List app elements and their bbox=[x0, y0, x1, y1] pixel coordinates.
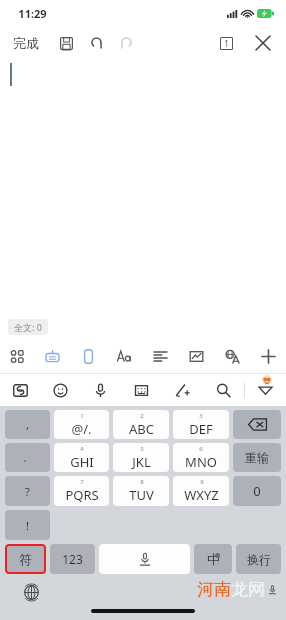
button[interactable]: Page count bbox=[214, 31, 238, 55]
button[interactable]: 4 bbox=[54, 443, 109, 472]
staticText: 。 bbox=[23, 452, 32, 463]
button[interactable]: 完成 bbox=[10, 30, 42, 56]
staticText: ABC bbox=[129, 420, 154, 438]
staticText: , bbox=[26, 417, 29, 432]
button[interactable]: 3 bbox=[173, 410, 229, 439]
staticText: 河南 bbox=[197, 579, 231, 600]
button[interactable]: Translate bbox=[214, 340, 250, 373]
button[interactable]: ? bbox=[5, 476, 50, 506]
button[interactable]: Templates bbox=[0, 340, 35, 373]
button[interactable]: Handwriting bbox=[162, 374, 203, 406]
staticText: 完成 bbox=[13, 35, 39, 51]
button[interactable]: ! bbox=[5, 510, 50, 540]
staticText: 0 bbox=[253, 482, 261, 500]
button[interactable]: 2 bbox=[113, 410, 169, 439]
button[interactable]: Save bbox=[54, 31, 78, 55]
staticText: 123 bbox=[62, 551, 83, 567]
button[interactable]: Backspace bbox=[233, 410, 281, 439]
staticText: 5 bbox=[140, 445, 144, 453]
button[interactable]: 6 bbox=[173, 443, 229, 472]
button[interactable]: 7 bbox=[54, 476, 109, 506]
button[interactable]: Close bbox=[250, 30, 276, 56]
staticText: TUV bbox=[129, 486, 154, 504]
staticText: ? bbox=[25, 484, 30, 499]
button[interactable]: Alignment bbox=[142, 340, 178, 373]
button[interactable]: Switch input language bbox=[20, 581, 42, 603]
staticText: ! bbox=[26, 518, 29, 533]
button[interactable]: More bbox=[250, 340, 286, 373]
button[interactable]: Font size bbox=[106, 340, 142, 373]
button[interactable]: Page bbox=[70, 340, 106, 373]
button[interactable]: 1 bbox=[54, 410, 109, 439]
button[interactable]: Undo bbox=[84, 31, 108, 55]
staticText: 11:29 bbox=[18, 6, 47, 21]
staticText: 4 bbox=[80, 445, 84, 453]
button[interactable]: Insert image bbox=[178, 340, 214, 373]
staticText: 9 bbox=[200, 478, 204, 486]
staticText: 1 bbox=[80, 412, 84, 420]
button[interactable]: Hide keyboard bbox=[245, 374, 286, 406]
button[interactable]: 换行 bbox=[236, 544, 281, 574]
button[interactable]: 5 bbox=[113, 443, 169, 472]
button[interactable]: 0 bbox=[233, 476, 281, 506]
button[interactable]: 。 bbox=[5, 443, 50, 472]
staticText: GHI bbox=[70, 453, 94, 471]
staticText: 中 bbox=[207, 551, 220, 567]
staticText: 3 bbox=[199, 412, 203, 420]
staticText: 2 bbox=[140, 412, 144, 420]
button[interactable]: 重输 bbox=[233, 443, 281, 472]
button[interactable]: Redo bbox=[114, 31, 138, 55]
staticText: 龙网 bbox=[231, 579, 265, 600]
staticText: WXYZ bbox=[184, 486, 219, 504]
staticText: 换行 bbox=[247, 552, 271, 567]
button[interactable]: Clipboard bbox=[35, 340, 70, 373]
staticText: MNO bbox=[185, 453, 217, 471]
button[interactable]: Sogou input settings bbox=[0, 374, 40, 406]
staticText: @/. bbox=[71, 420, 92, 438]
staticText: 8 bbox=[140, 478, 144, 486]
staticText: 6 bbox=[199, 445, 203, 453]
staticText: 7 bbox=[80, 478, 84, 486]
button[interactable]: 9 bbox=[173, 476, 229, 506]
button[interactable]: Keyboard layout bbox=[121, 374, 162, 406]
staticText: 全文: 0 bbox=[14, 321, 42, 333]
button[interactable]: Space bbox=[99, 544, 190, 574]
button[interactable]: 123 bbox=[50, 544, 95, 574]
button[interactable]: Emoji bbox=[40, 374, 80, 406]
button[interactable]: Search bbox=[203, 374, 244, 406]
staticText: 1 bbox=[224, 38, 229, 49]
staticText: JKL bbox=[132, 453, 151, 471]
staticText: 重输 bbox=[245, 450, 269, 465]
staticText: PQRS bbox=[65, 486, 99, 504]
button[interactable]: , bbox=[5, 410, 50, 439]
staticText: 符 bbox=[19, 551, 32, 567]
button[interactable]: 中 bbox=[194, 544, 232, 574]
button[interactable]: 8 bbox=[113, 476, 169, 506]
button[interactable]: 符 bbox=[5, 544, 46, 574]
button[interactable]: Voice input bbox=[80, 374, 121, 406]
staticText: DEF bbox=[189, 420, 213, 438]
